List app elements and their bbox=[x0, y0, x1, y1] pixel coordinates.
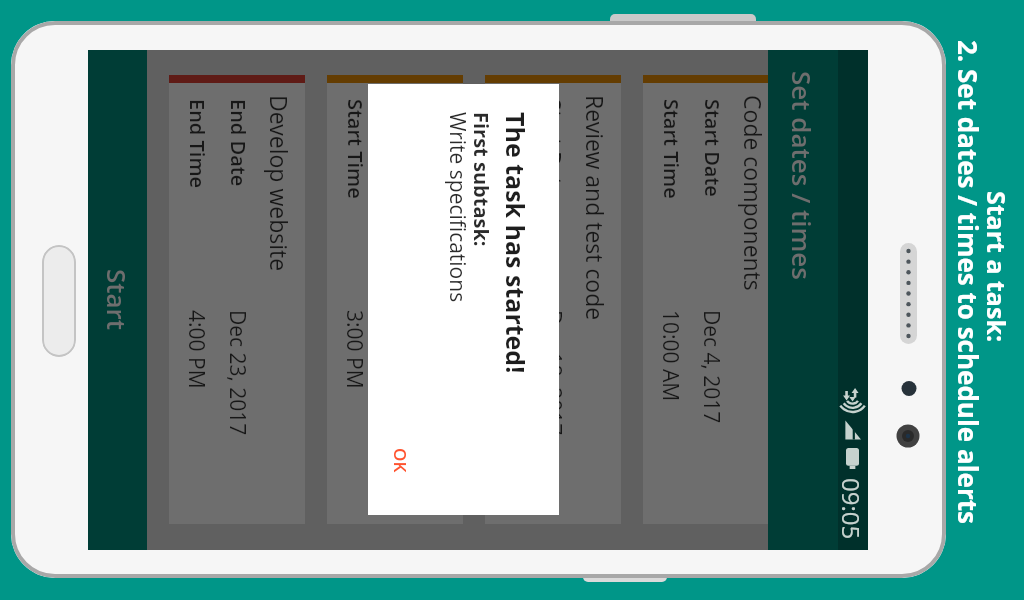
staticText: Start Date bbox=[541, 99, 568, 197]
staticText: 4:00 PM bbox=[182, 310, 211, 389]
staticText: Write specifications bbox=[422, 95, 453, 304]
staticText: Start Time bbox=[342, 99, 369, 199]
other: Signal bbox=[843, 420, 863, 440]
staticText: Set dates / times bbox=[785, 71, 820, 281]
other: Battery bbox=[846, 448, 859, 469]
staticText: Dec 18, 2017 bbox=[539, 310, 568, 436]
staticText: Dec 4, 2017 bbox=[697, 310, 726, 424]
staticText: 10:00 AM bbox=[656, 310, 685, 402]
staticText: The task has started! bbox=[499, 112, 533, 374]
staticText: Write specifications bbox=[443, 112, 472, 303]
button[interactable]: Review and test code bbox=[485, 75, 621, 524]
staticText: 2. Set dates / times to schedule alerts bbox=[954, 40, 986, 524]
staticText: Start a task: bbox=[982, 191, 1014, 343]
other: Wi-Fi bbox=[842, 390, 864, 412]
button[interactable]: Set dates / times bbox=[768, 50, 838, 550]
button[interactable]: OK bbox=[384, 440, 417, 481]
staticText: Start Date bbox=[699, 99, 726, 197]
staticText: Start Time bbox=[658, 99, 685, 199]
staticText: Dec 23, 2017 bbox=[223, 310, 252, 436]
staticText: Develop website bbox=[264, 95, 295, 272]
staticText: First subtask: bbox=[468, 112, 495, 247]
button[interactable]: Write specifications bbox=[327, 75, 463, 524]
staticText: Start bbox=[100, 269, 135, 331]
staticText: Review and test code bbox=[580, 95, 611, 321]
button[interactable]: Code components bbox=[643, 75, 768, 524]
button[interactable]: Start bbox=[88, 50, 147, 550]
button[interactable]: Develop website bbox=[169, 75, 305, 524]
staticText: End Date bbox=[225, 99, 252, 187]
staticText: 3:00 PM bbox=[340, 310, 369, 389]
staticText: Start Time bbox=[500, 99, 527, 199]
staticText: 09:05 bbox=[838, 478, 868, 540]
staticText: 9:00 AM bbox=[498, 310, 527, 390]
staticText: End Time bbox=[184, 99, 211, 189]
staticText: OK bbox=[389, 448, 412, 473]
staticText: Code components bbox=[738, 95, 768, 291]
